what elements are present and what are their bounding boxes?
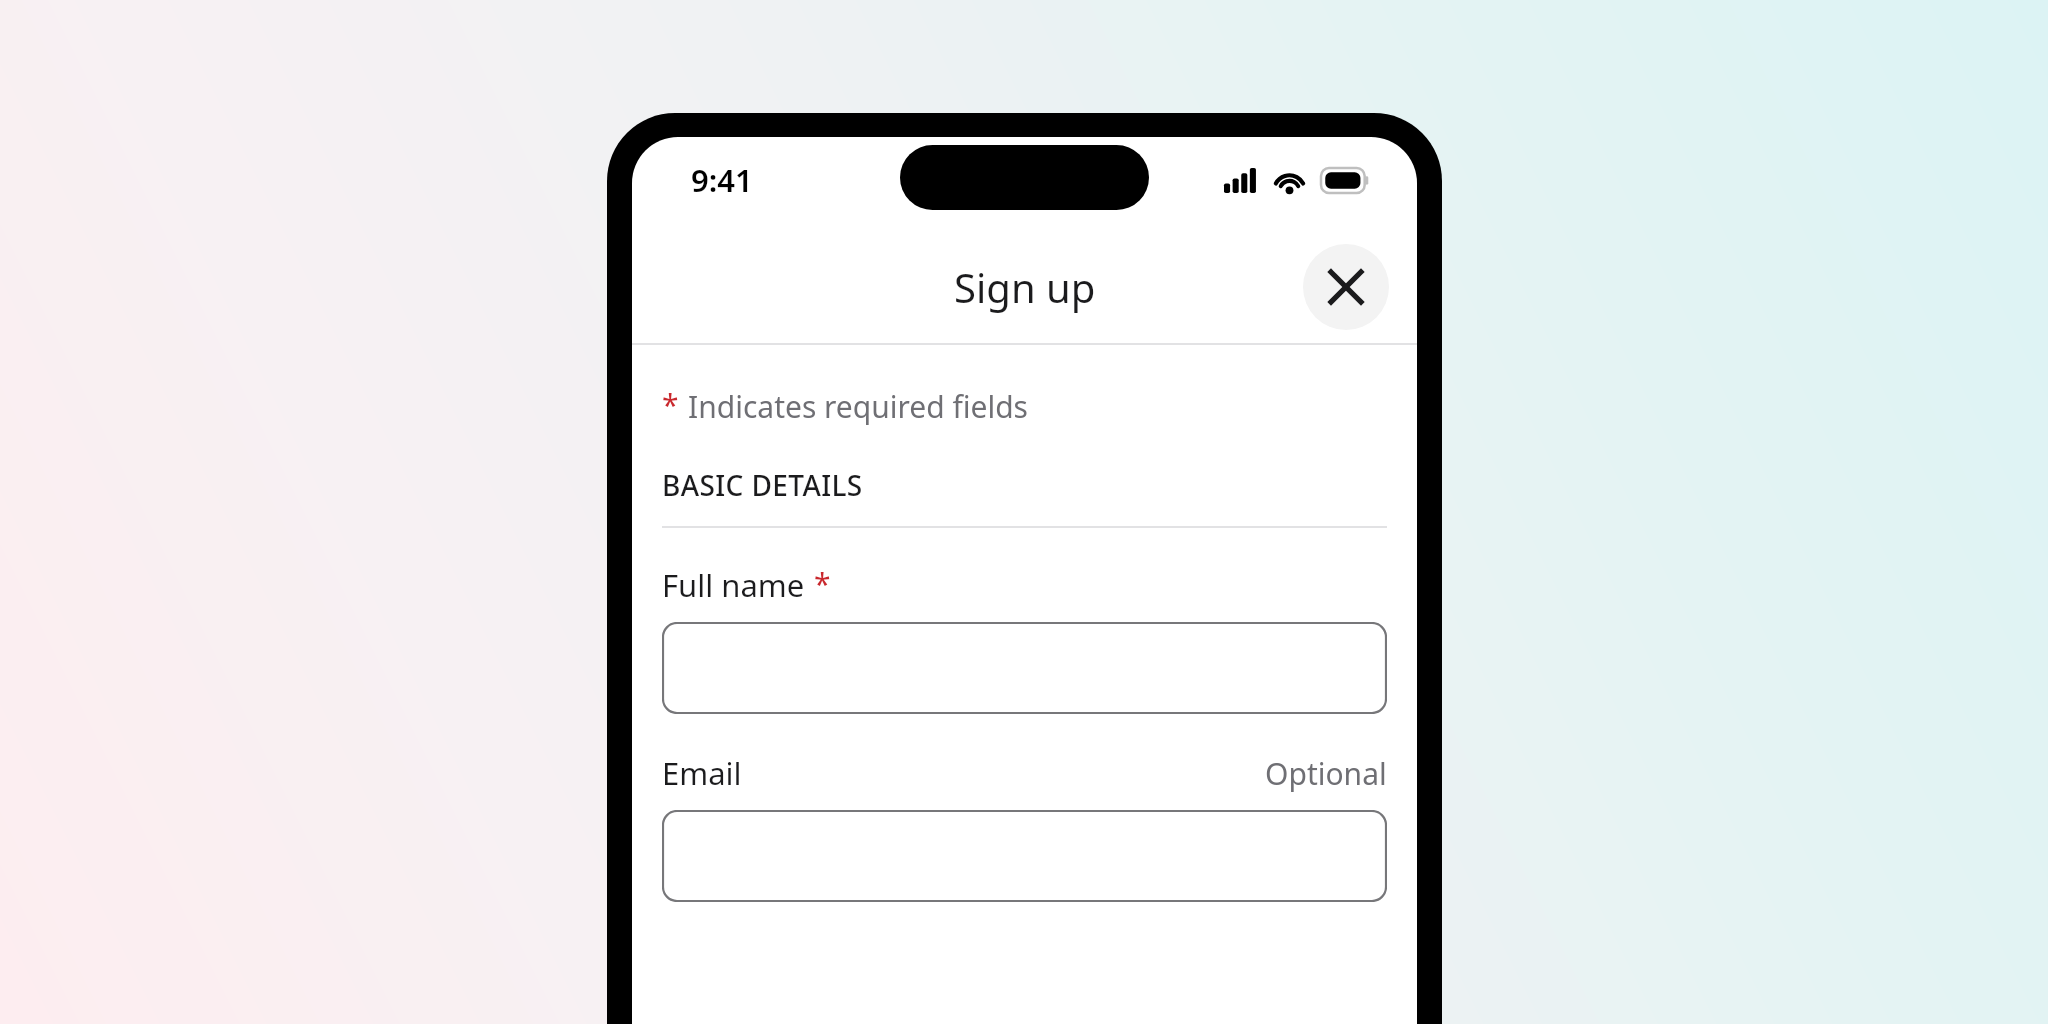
button[interactable] bbox=[662, 622, 1387, 714]
staticText: * bbox=[662, 384, 679, 425]
button[interactable] bbox=[662, 810, 1387, 902]
staticText: Indicates required fields bbox=[688, 386, 1028, 427]
staticText: BASIC DETAILS bbox=[662, 466, 863, 504]
staticText: 9:41 bbox=[691, 159, 753, 201]
staticText: Sign up bbox=[954, 260, 1096, 314]
staticText: * bbox=[814, 563, 831, 604]
button[interactable]: Close bbox=[1303, 244, 1389, 330]
staticText: Email bbox=[662, 752, 742, 794]
staticText: Optional bbox=[1265, 753, 1387, 794]
staticText: Full name bbox=[662, 564, 805, 606]
